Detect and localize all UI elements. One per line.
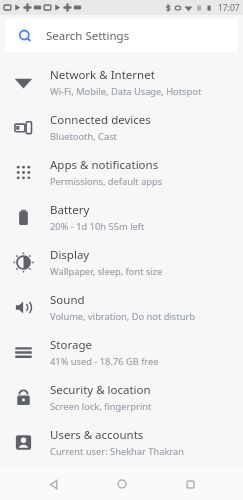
button[interactable]: Network & Internet [0,60,243,105]
button[interactable]: Storage [0,330,243,375]
staticText: Current user: Shekhar Thakran [50,445,185,458]
staticText: Bluetooth, Cast [50,130,117,143]
button[interactable]: Security & location [0,375,243,420]
staticText: Storage [50,337,92,353]
staticText: Apps & notifications [50,157,159,173]
button[interactable]: Sound [0,285,243,330]
staticText: 41% used - 18.76 GB free [50,355,159,368]
button[interactable]: Recent apps [175,469,205,499]
staticText: Display [50,247,90,263]
staticText: Sound [50,292,85,308]
staticText: Permissions, default apps [50,175,163,188]
staticText: Wallpaper, sleep, font size [50,265,163,278]
staticText: Search Settings [46,28,130,44]
staticText: Security & location [50,382,151,398]
button[interactable]: Connected devices [0,105,243,150]
staticText: Wi-Fi, Mobile, Data Usage, Hotspot [50,85,202,98]
staticText: Network & Internet [50,67,155,83]
button[interactable]: Battery [0,195,243,240]
staticText: Screen lock, fingerprint [50,400,152,413]
button[interactable]: Search Settings [5,19,238,52]
button[interactable]: Display [0,240,243,285]
button[interactable]: Back [38,469,68,499]
staticText: Connected devices [50,112,151,128]
staticText: 20% - 1d 10h 55m left [50,220,145,233]
staticText: Volume, vibration, Do not disturb [50,310,195,323]
staticText: Users & accounts [50,427,144,443]
staticText: 17:07 [218,2,240,14]
button[interactable]: Users & accounts [0,420,243,465]
button[interactable]: Home [107,469,137,499]
button[interactable]: Apps & notifications [0,150,243,195]
staticText: Battery [50,202,90,218]
